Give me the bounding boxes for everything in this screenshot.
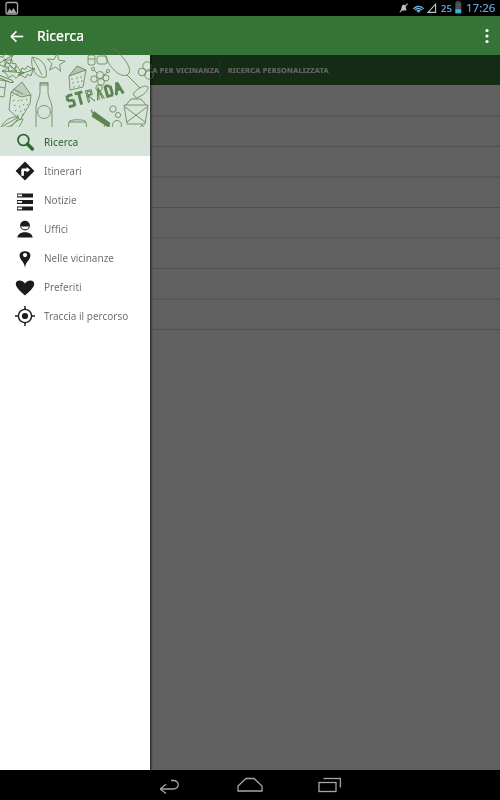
button[interactable]: Back	[146, 770, 194, 800]
button[interactable]: RICERCA PER VICINANZA	[125, 65, 220, 75]
button[interactable]	[0, 209, 500, 240]
button[interactable]	[0, 178, 500, 209]
button[interactable]: Uffici	[0, 214, 150, 243]
button[interactable]: More options	[470, 21, 500, 51]
button[interactable]: Traccia il percorso	[0, 301, 150, 330]
staticText: Ricerca	[44, 135, 79, 149]
button[interactable]	[0, 240, 500, 271]
button[interactable]: Nelle vicinanze	[0, 243, 150, 272]
button[interactable]	[0, 271, 500, 302]
button[interactable]	[0, 116, 500, 147]
button[interactable]	[0, 147, 500, 178]
staticText: 17:26	[466, 0, 496, 16]
button[interactable]: Back	[0, 19, 34, 53]
staticText: Traccia il percorso	[44, 309, 129, 323]
button[interactable]: Recents	[306, 770, 354, 800]
button[interactable]: Itinerari	[0, 156, 150, 185]
button[interactable]: Ricerca	[0, 127, 150, 156]
button[interactable]: Preferiti	[0, 272, 150, 301]
staticText: RICERCA PER VICINANZA	[125, 65, 220, 75]
staticText: Ricerca	[37, 26, 85, 45]
staticText: RICERCA PERSONALIZZATA	[228, 65, 329, 75]
button[interactable]: RICERCA PERSONALIZZATA	[228, 65, 329, 75]
staticText: Preferiti	[44, 280, 82, 294]
staticText: Notizie	[44, 193, 77, 207]
staticText: Nelle vicinanze	[44, 251, 114, 265]
staticText: Uffici	[44, 222, 69, 236]
button[interactable]: Notizie	[0, 185, 150, 214]
button[interactable]	[0, 85, 500, 116]
staticText: Itinerari	[44, 164, 82, 178]
staticText: 25	[441, 2, 452, 15]
button[interactable]	[0, 302, 500, 333]
button[interactable]: Home	[226, 770, 274, 800]
